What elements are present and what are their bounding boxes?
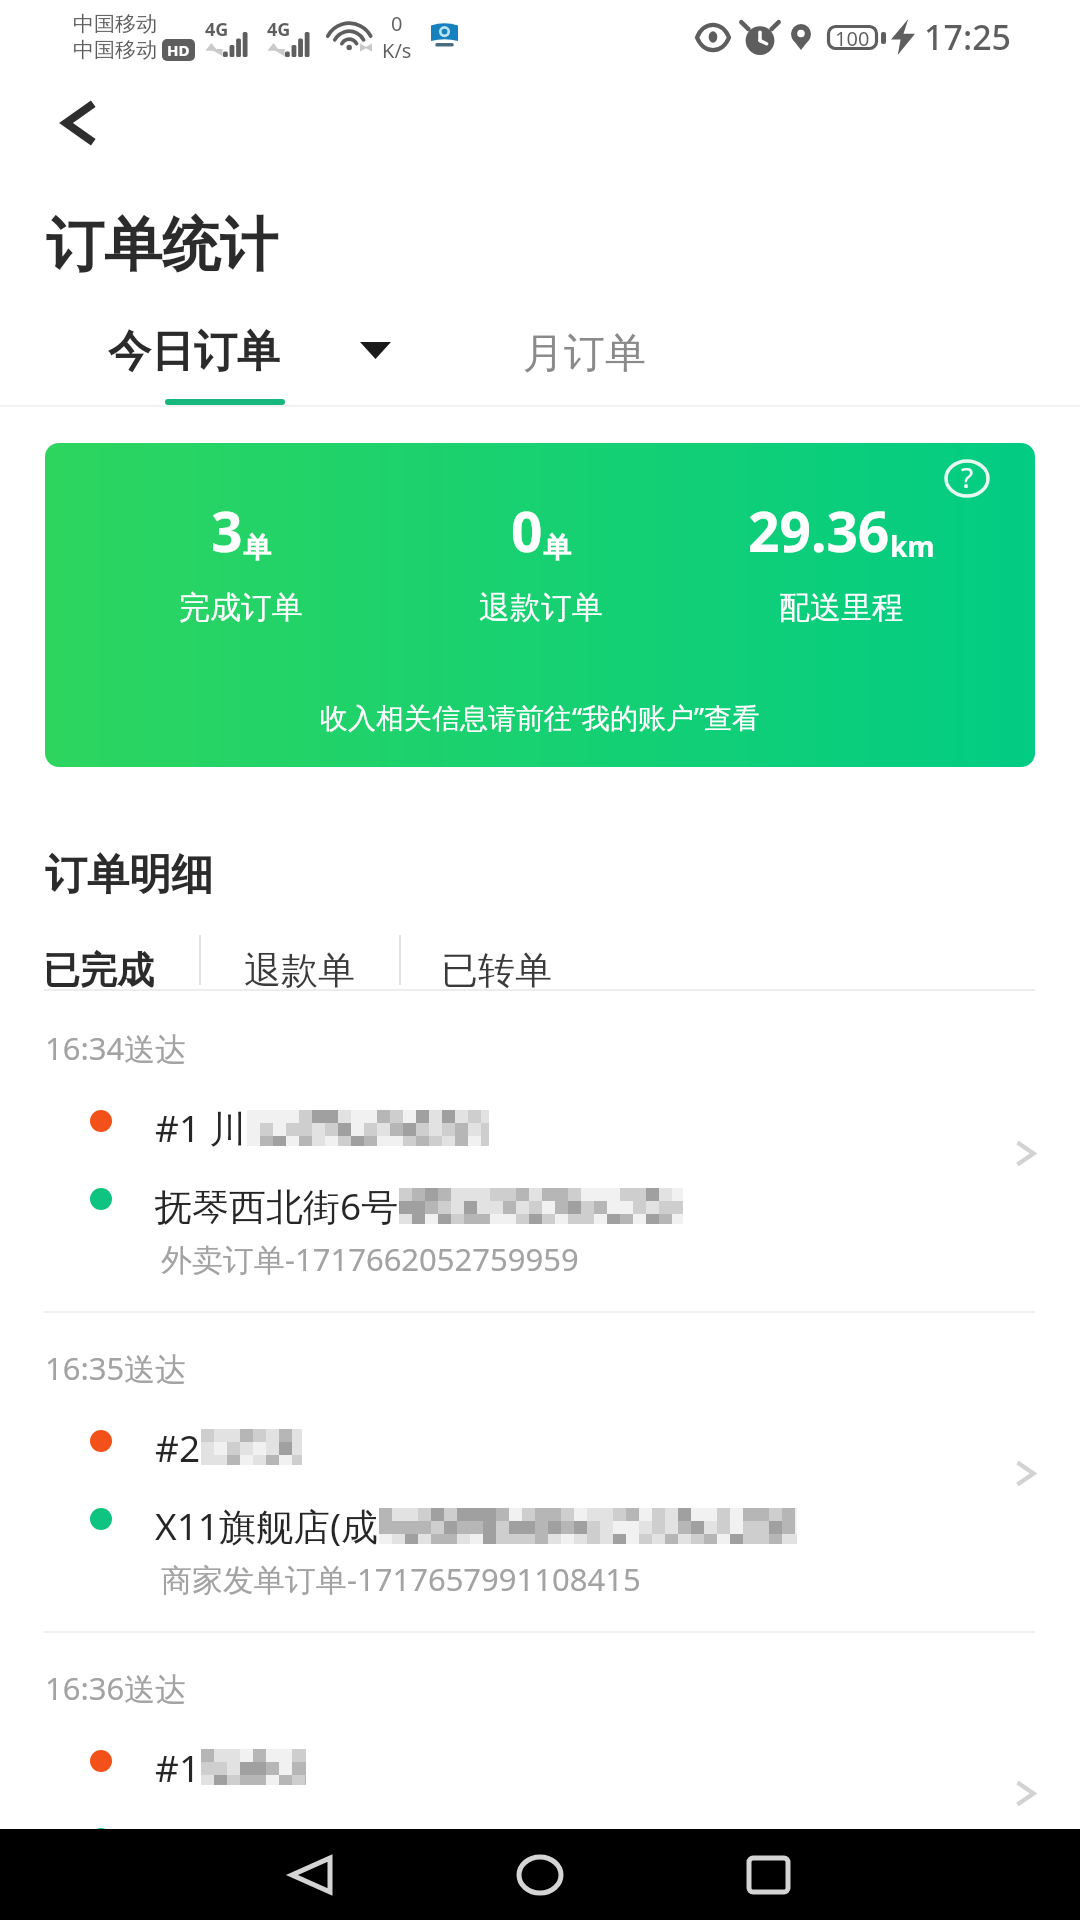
staticText: 4G bbox=[205, 17, 229, 42]
staticText: K/s bbox=[382, 37, 412, 64]
staticText: 月订单 bbox=[523, 328, 646, 380]
button[interactable]: #2 bbox=[0, 1313, 1080, 1613]
staticText: 商家发单订单-1717657991108415 bbox=[161, 1558, 641, 1600]
button[interactable]: #1 川 bbox=[0, 993, 1080, 1293]
button[interactable]: Help bbox=[937, 452, 997, 504]
staticText: 3 bbox=[211, 493, 243, 568]
staticText: #1 bbox=[155, 1742, 201, 1792]
staticText: 完成订单 bbox=[179, 588, 303, 627]
staticText: 今日订单 bbox=[108, 325, 280, 379]
staticText: 16:34送达 bbox=[45, 1027, 187, 1069]
button[interactable]: 已完成 bbox=[0, 935, 199, 1005]
staticText: X11旗舰店(成 bbox=[155, 1500, 379, 1551]
staticText: 29.36 bbox=[748, 493, 890, 568]
staticText: 退款单 bbox=[244, 947, 355, 994]
staticText: 已转单 bbox=[441, 947, 552, 994]
staticText: 4G bbox=[267, 17, 291, 42]
staticText: 中国移动 bbox=[73, 37, 157, 63]
staticText: 配送里程 bbox=[779, 588, 903, 627]
staticText: 收入相关信息请前往“我的账户”查看 bbox=[320, 698, 761, 736]
button[interactable]: Recents bbox=[718, 1829, 818, 1920]
button[interactable]: Help bbox=[45, 443, 1035, 767]
button[interactable]: 今日订单 bbox=[70, 296, 320, 396]
staticText: HD bbox=[167, 40, 190, 60]
staticText: 16:35送达 bbox=[45, 1347, 187, 1389]
staticText: 单 bbox=[543, 530, 571, 565]
staticText: 中国移动 bbox=[73, 11, 157, 37]
staticText: 单 bbox=[243, 530, 271, 565]
staticText: 100 bbox=[835, 25, 870, 50]
staticText: 订单明细 bbox=[45, 849, 213, 902]
button[interactable]: 已转单 bbox=[401, 935, 601, 1005]
button[interactable]: Home bbox=[490, 1829, 590, 1920]
staticText: 17:25 bbox=[924, 14, 1012, 60]
staticText: X11旗舰店(成都万达广场)2 bbox=[155, 1820, 596, 1871]
staticText: 已完成 bbox=[43, 947, 154, 994]
button[interactable]: Back bbox=[261, 1829, 361, 1920]
staticText: #2 bbox=[155, 1422, 201, 1472]
staticText: 抚琴西北街6号 bbox=[155, 1180, 399, 1231]
staticText: 外卖订单-1717662052759959 bbox=[161, 1238, 579, 1280]
button[interactable]: #1 bbox=[0, 1633, 1080, 1920]
staticText: 订单统计 bbox=[46, 209, 278, 282]
staticText: 16:36送达 bbox=[45, 1667, 187, 1709]
staticText: 退款订单 bbox=[479, 588, 603, 627]
button[interactable]: Expand order range bbox=[330, 312, 420, 390]
staticText: #1 川 bbox=[155, 1102, 247, 1153]
button[interactable]: 月订单 bbox=[466, 296, 716, 396]
staticText: 0 bbox=[391, 10, 403, 37]
button[interactable]: Back bbox=[38, 83, 118, 163]
button[interactable]: 退款单 bbox=[201, 935, 399, 1005]
staticText: ? bbox=[961, 458, 974, 496]
staticText: km bbox=[890, 527, 935, 565]
staticText: 0 bbox=[511, 493, 543, 568]
